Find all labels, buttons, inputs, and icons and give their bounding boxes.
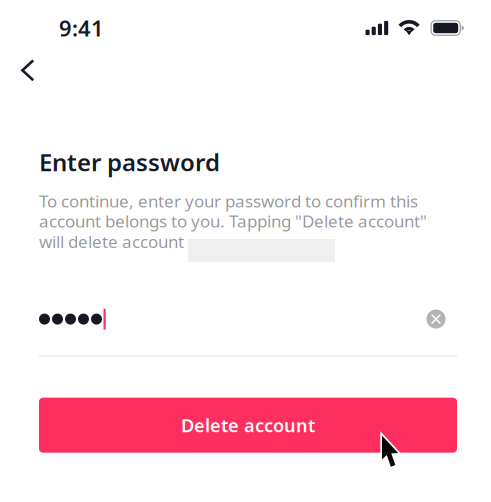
button[interactable]: Back <box>0 42 53 94</box>
staticText: will delete account <box>39 230 188 253</box>
staticText: 9:41 <box>59 13 104 43</box>
button[interactable]: Clear password <box>419 302 457 336</box>
button[interactable]: Delete account <box>39 398 457 453</box>
staticText: Enter password <box>39 146 220 178</box>
staticText: To continue, enter your password to conf… <box>39 189 427 232</box>
staticText: Delete account <box>181 413 315 437</box>
